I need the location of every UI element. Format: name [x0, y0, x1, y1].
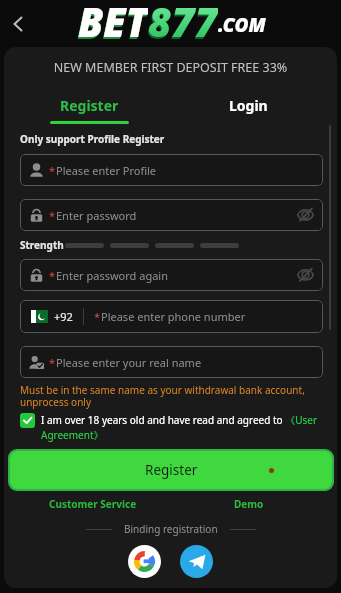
staticText: +92 [54, 309, 73, 324]
staticText: Please enter Profile [56, 163, 157, 178]
staticText: BET [77, 0, 147, 43]
staticText: Please enter your real name [56, 355, 202, 370]
staticText: * [49, 163, 56, 178]
button[interactable]: Login [166, 96, 337, 130]
staticText: * [94, 309, 101, 324]
button[interactable]: * [20, 346, 323, 378]
button[interactable]: Customer Service [49, 497, 137, 511]
button[interactable]: Show password [297, 206, 314, 223]
button[interactable]: Sign in with Google [128, 545, 161, 578]
staticText: Register [145, 461, 198, 479]
staticText: I am over 18 years old and have read and… [41, 413, 323, 442]
button[interactable]: * [20, 154, 323, 186]
button[interactable]: Back [2, 9, 32, 39]
staticText: 877 [147, 0, 217, 43]
button[interactable]: Register [4, 96, 166, 130]
button[interactable]: Sign in with Telegram [180, 545, 213, 578]
staticText: 877 [148, 0, 218, 41]
staticText: NEW MEMBER FIRST DEPOSIT FREE 33% [4, 59, 337, 76]
staticText: BET [78, 0, 148, 41]
staticText: Enter password again [56, 268, 168, 283]
staticText: Strength [20, 238, 64, 252]
button[interactable]: I am over 18 years old and have read and… [20, 413, 323, 442]
button[interactable]: +92 [20, 300, 323, 333]
staticText: Login [229, 96, 268, 115]
staticText: * [49, 355, 56, 370]
staticText: .COM [218, 12, 266, 38]
staticText: Register [60, 96, 119, 115]
staticText: Only support Profile Register [20, 132, 165, 146]
staticText: Please enter phone number [101, 309, 246, 324]
staticText: Must be in the same name as your withdra… [20, 383, 323, 409]
staticText: * [49, 208, 56, 223]
staticText: Enter password [56, 208, 137, 223]
button[interactable]: Show password [297, 266, 314, 283]
button[interactable]: Demo [234, 497, 264, 511]
button[interactable]: * [20, 199, 323, 231]
button[interactable]: Register [10, 451, 332, 489]
button[interactable]: * [20, 259, 323, 291]
staticText: Binding registration [124, 522, 218, 536]
staticText: * [49, 268, 56, 283]
